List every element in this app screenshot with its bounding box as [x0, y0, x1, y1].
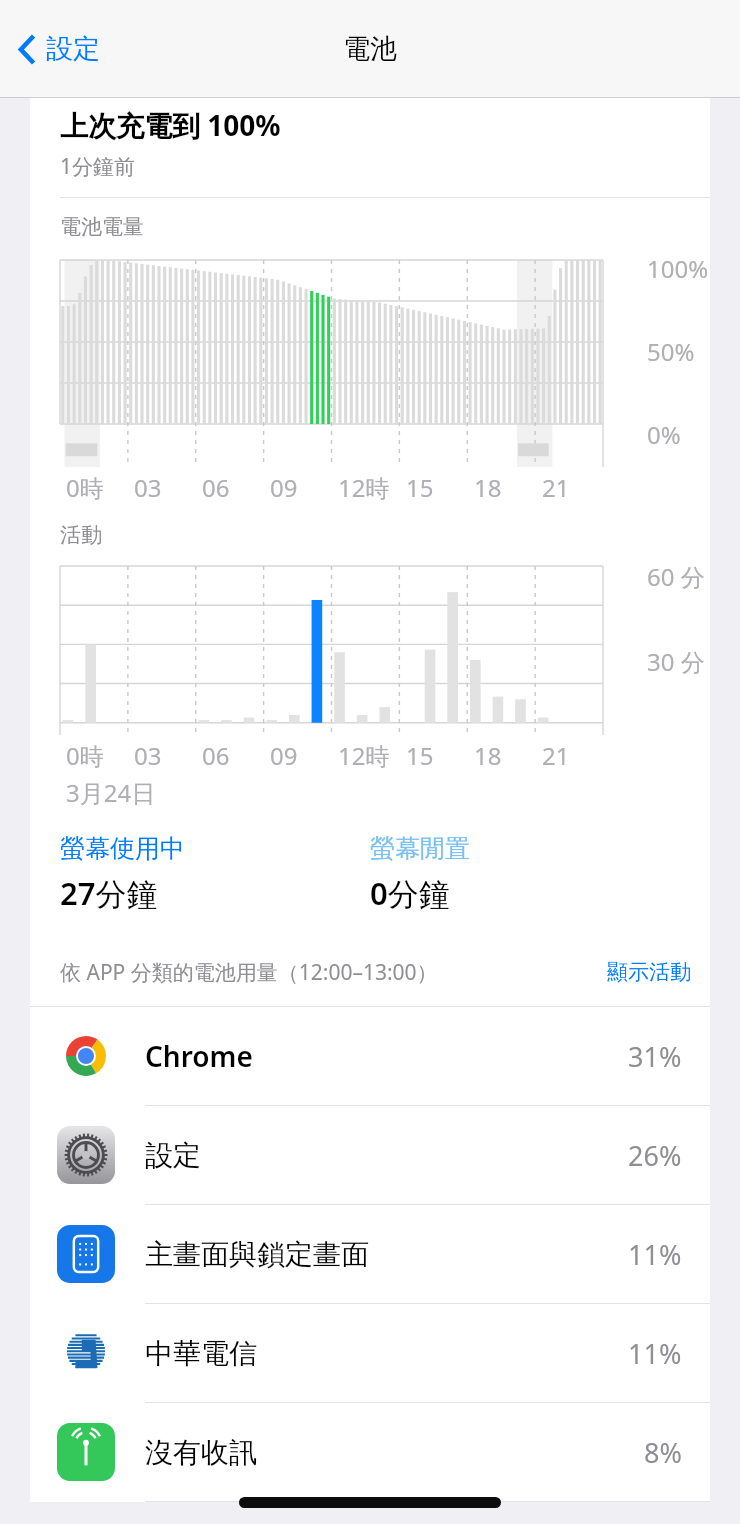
- staticText: 27分鐘: [60, 872, 158, 914]
- staticText: 主畫面與鎖定畫面: [145, 1237, 369, 1272]
- staticText: 11%: [628, 1335, 682, 1372]
- staticText: 15: [406, 739, 434, 772]
- staticText: 06: [202, 471, 230, 504]
- button[interactable]: 設定: [30, 1106, 710, 1204]
- staticText: 12時: [338, 739, 390, 772]
- staticText: Chrome: [145, 1037, 253, 1075]
- staticText: 30 分: [647, 645, 705, 678]
- staticText: 03: [134, 471, 162, 504]
- staticText: 0時: [66, 471, 104, 504]
- button[interactable]: 中華電信: [30, 1304, 710, 1402]
- staticText: 3月24日: [66, 776, 156, 809]
- staticText: 18: [474, 471, 502, 504]
- button[interactable]: 顯示活動: [604, 956, 694, 988]
- staticText: 18: [474, 739, 502, 772]
- staticText: 8%: [644, 1434, 682, 1471]
- staticText: 螢幕閒置: [370, 833, 470, 864]
- staticText: 12時: [338, 471, 390, 504]
- staticText: 上次充電到 100%: [60, 106, 281, 144]
- staticText: 09: [270, 471, 298, 504]
- staticText: 11%: [628, 1236, 682, 1273]
- staticText: 100%: [647, 252, 709, 285]
- staticText: 0%: [647, 418, 681, 451]
- staticText: 顯示活動: [607, 959, 691, 985]
- staticText: 設定: [46, 32, 100, 66]
- staticText: 21: [542, 739, 570, 772]
- button[interactable]: Back: [12, 24, 106, 74]
- staticText: 15: [406, 471, 434, 504]
- staticText: 沒有收訊: [145, 1435, 257, 1470]
- staticText: 21: [542, 471, 570, 504]
- other: Back: [18, 33, 37, 66]
- staticText: 0時: [66, 739, 104, 772]
- button[interactable]: 主畫面與鎖定畫面: [30, 1205, 710, 1303]
- staticText: 31%: [628, 1038, 682, 1075]
- staticText: 電池: [343, 32, 397, 66]
- staticText: 0分鐘: [370, 872, 450, 914]
- staticText: 活動: [60, 522, 102, 548]
- staticText: 1分鐘前: [60, 152, 136, 181]
- staticText: 26%: [628, 1137, 682, 1174]
- staticText: 50%: [647, 335, 695, 368]
- staticText: 60 分: [647, 560, 705, 593]
- staticText: 06: [202, 739, 230, 772]
- button[interactable]: 沒有收訊: [30, 1403, 710, 1501]
- staticText: 中華電信: [145, 1336, 257, 1371]
- staticText: 電池電量: [60, 214, 144, 240]
- button[interactable]: Chrome: [30, 1007, 710, 1105]
- staticText: 03: [134, 739, 162, 772]
- staticText: 依 APP 分類的電池用量（12:00–13:00）: [60, 958, 438, 987]
- staticText: 09: [270, 739, 298, 772]
- staticText: 螢幕使用中: [60, 833, 185, 864]
- staticText: 設定: [145, 1138, 201, 1173]
